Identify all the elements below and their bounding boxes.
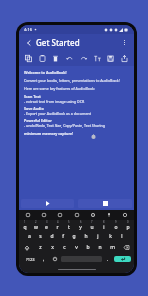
staticText: 2	[35, 220, 37, 224]
button[interactable]: Period	[103, 254, 113, 264]
staticText: Powerful Editor	[24, 118, 52, 123]
button[interactable]: Undo	[64, 53, 75, 64]
button[interactable]: g	[68, 231, 80, 242]
button[interactable]: 6	[74, 220, 86, 231]
staticText: Convert your books, letters, presentatio…	[24, 78, 120, 83]
staticText: - extract text from image using OCR	[24, 99, 85, 104]
staticText: y	[79, 224, 82, 231]
button[interactable]: x	[46, 242, 58, 253]
button[interactable]: z	[34, 242, 46, 253]
button[interactable]: 7	[86, 220, 98, 231]
staticText: i	[103, 224, 105, 231]
button[interactable]: Share	[119, 53, 130, 64]
button[interactable]: Emoji	[49, 254, 60, 264]
button[interactable]: 4	[52, 220, 63, 231]
button[interactable]: Shift	[19, 242, 34, 253]
staticText: m	[110, 244, 115, 251]
staticText: 0	[127, 220, 129, 224]
button[interactable]: 3	[41, 220, 52, 231]
button[interactable]: Settings	[89, 211, 97, 219]
staticText: 6	[80, 220, 82, 224]
button[interactable]: a	[24, 231, 35, 242]
button[interactable]: Delete	[50, 53, 61, 64]
button[interactable]: c	[58, 242, 70, 253]
staticText: z	[39, 244, 42, 251]
button[interactable]: n	[94, 242, 106, 253]
staticText: 1	[24, 220, 26, 224]
staticText: 7	[91, 220, 93, 224]
staticText: k	[109, 233, 112, 240]
button[interactable]: Paste	[37, 53, 48, 64]
button[interactable]: 0	[122, 220, 134, 231]
button[interactable]: j	[92, 231, 104, 242]
button[interactable]: v	[70, 242, 82, 253]
staticText: 5	[68, 220, 70, 224]
staticText: j	[97, 233, 99, 240]
button[interactable]: Emoji	[24, 211, 32, 219]
button[interactable]: 1	[19, 220, 30, 231]
staticText: Scan Text	[24, 94, 41, 99]
staticText: c	[63, 244, 66, 251]
staticText: w	[34, 224, 38, 231]
staticText: - Export your AudioBook as a document	[24, 111, 91, 116]
staticText: 4	[57, 220, 59, 224]
button[interactable]: Voice input	[105, 211, 113, 219]
staticText: o	[114, 224, 118, 231]
button[interactable]: h	[80, 231, 92, 242]
staticText: p	[126, 224, 130, 231]
button[interactable]: 5	[63, 220, 74, 231]
button[interactable]: More options	[119, 37, 130, 48]
button[interactable]: GIF	[40, 211, 48, 219]
button[interactable]: More	[121, 211, 129, 219]
button[interactable]: Format text	[92, 53, 103, 64]
button[interactable]: Comma	[39, 254, 49, 264]
staticText: e	[45, 224, 48, 231]
staticText: q	[23, 224, 27, 231]
staticText: f	[62, 233, 64, 240]
button[interactable]: Enter	[114, 256, 131, 262]
button[interactable]: ?123	[21, 254, 39, 264]
staticText: h	[84, 233, 88, 240]
staticText: ?123	[26, 257, 35, 262]
button[interactable]: Stop	[78, 199, 132, 208]
button[interactable]: m	[106, 242, 118, 253]
button[interactable]: s	[35, 231, 46, 242]
staticText: 8	[103, 220, 105, 224]
staticText: a	[28, 233, 31, 240]
staticText: 3	[46, 220, 48, 224]
staticText: n	[98, 244, 102, 251]
button[interactable]: Clipboard	[56, 211, 64, 219]
button[interactable]: Play	[21, 199, 74, 208]
staticText: Save Audio	[24, 106, 44, 111]
button[interactable]: f	[57, 231, 68, 242]
staticText: l	[121, 233, 123, 240]
staticText: - undo/Redo, Text Size, Copy/Paste, Text…	[24, 123, 105, 128]
staticText: x	[51, 244, 54, 251]
button[interactable]: Copy	[23, 53, 34, 64]
button[interactable]: 8	[98, 220, 110, 231]
button[interactable]: Redo	[78, 53, 89, 64]
staticText: b	[86, 244, 90, 251]
staticText: v	[75, 244, 78, 251]
staticText: d	[50, 233, 54, 240]
staticText: g	[72, 233, 76, 240]
button[interactable]: 9	[110, 220, 122, 231]
button[interactable]: l	[116, 231, 128, 242]
staticText: Welcome to AudioBook!	[24, 70, 67, 75]
button[interactable]: b	[82, 242, 94, 253]
staticText: Here are some key features of AudioBook:	[24, 86, 95, 91]
button[interactable]: d	[46, 231, 57, 242]
button[interactable]: Back	[23, 37, 34, 48]
button[interactable]: k	[104, 231, 116, 242]
staticText: ,	[43, 256, 45, 263]
button[interactable]: Backspace	[118, 242, 134, 253]
staticText: t	[68, 224, 70, 231]
button[interactable]: 2	[30, 220, 41, 231]
staticText: u	[90, 224, 94, 231]
button[interactable]: Translate	[73, 211, 81, 219]
staticText: minimum memory capture!	[24, 131, 74, 136]
button[interactable]: Save	[105, 53, 116, 64]
staticText: .	[107, 256, 109, 263]
staticText: 9	[115, 220, 117, 224]
